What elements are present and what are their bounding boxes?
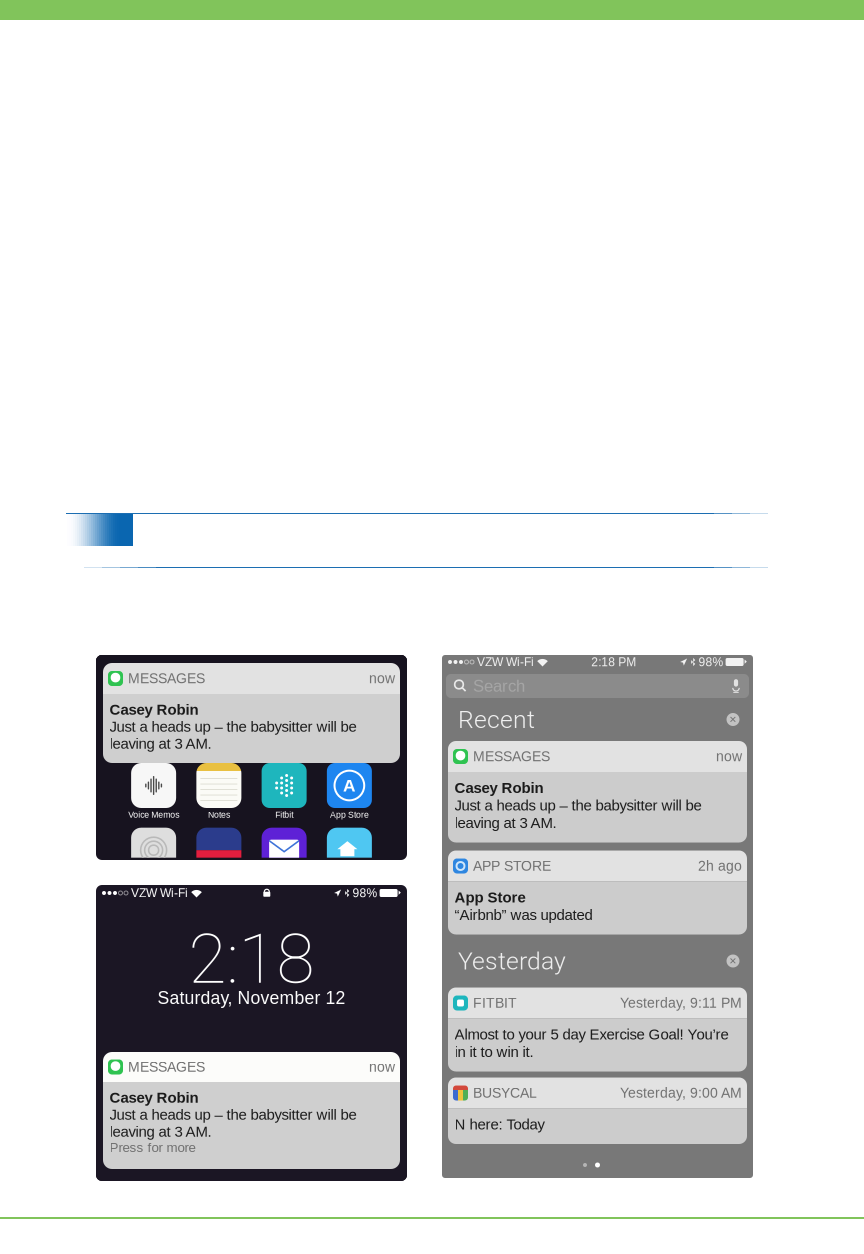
staticText: 2:18	[188, 918, 314, 1000]
staticText: Voice Memos	[128, 810, 179, 820]
staticText: Press for more	[109, 1140, 195, 1155]
staticText: App Store	[454, 889, 525, 906]
staticText: leaving at 3 AM.	[109, 735, 211, 752]
staticText: APP STORE	[473, 858, 551, 874]
staticText: FITBIT	[473, 995, 517, 1011]
staticText: now	[369, 671, 395, 686]
staticText: BUSYCAL	[473, 1085, 537, 1101]
staticText: Casey Robin	[109, 1089, 198, 1106]
button[interactable]: Search	[442, 669, 753, 698]
button[interactable]: Clear Recent	[723, 709, 743, 729]
staticText: now	[369, 1059, 395, 1075]
staticText: MESSAGES	[473, 749, 550, 764]
staticText: Just a heads up – the babysitter will be	[109, 1106, 356, 1123]
staticText: Casey Robin	[109, 701, 198, 718]
staticText: App Store	[330, 810, 369, 820]
staticText: ✕	[729, 956, 737, 966]
staticText: Search	[473, 677, 525, 695]
staticText: in it to win it.	[454, 1043, 533, 1060]
staticText: leaving at 3 AM.	[109, 1123, 211, 1140]
staticText: Just a heads up – the babysitter will be	[109, 718, 356, 735]
staticText: Almost to your 5 day Exercise Goal! You’…	[454, 1026, 728, 1043]
staticText: 2:18 PM	[591, 655, 636, 669]
staticText: Casey Robin	[454, 779, 543, 796]
staticText: MESSAGES	[128, 1059, 205, 1075]
staticText: Just a heads up – the babysitter will be	[454, 797, 701, 814]
staticText: 98%	[699, 655, 724, 669]
staticText: Fitbit	[275, 810, 293, 820]
staticText: “Airbnb” was updated	[454, 906, 592, 923]
button[interactable]: Clear Yesterday	[723, 951, 743, 971]
staticText: ✕	[729, 714, 737, 725]
staticText: MESSAGES	[128, 671, 205, 686]
staticText: VZW Wi-Fi	[474, 655, 534, 669]
staticText: Saturday, November 12	[157, 988, 345, 1008]
staticText: leaving at 3 AM.	[454, 814, 556, 831]
staticText: Yesterday, 9:00 AM	[620, 1085, 742, 1101]
staticText: Recent	[458, 705, 535, 734]
staticText: Yesterday, 9:11 PM	[620, 995, 742, 1011]
staticText: A	[343, 776, 356, 795]
staticText: 98%	[353, 886, 378, 900]
staticText: VZW Wi-Fi	[128, 886, 188, 900]
staticText: Notes	[208, 810, 230, 820]
staticText: 2h ago	[698, 858, 742, 874]
staticText: Yesterday	[458, 946, 566, 975]
staticText: N here: Today	[454, 1116, 544, 1133]
staticText: now	[716, 749, 742, 764]
